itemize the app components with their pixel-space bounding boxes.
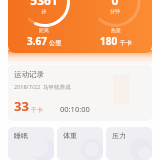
staticText: 距离 xyxy=(39,27,49,33)
button[interactable]: 5361 xyxy=(8,0,152,53)
staticText: 2018/7/22 马甲线养成 xyxy=(14,83,71,91)
staticText: 180 xyxy=(100,34,118,48)
staticText: 热量 xyxy=(111,27,121,33)
staticText: 分钟 xyxy=(90,8,140,14)
staticText: 压力 xyxy=(112,131,126,140)
staticText: 步 xyxy=(19,8,69,14)
staticText: 0 xyxy=(90,0,140,8)
staticText: 千卡 xyxy=(31,106,43,114)
staticText: 睡眠 xyxy=(14,131,28,140)
staticText: 33 xyxy=(14,97,29,115)
button[interactable]: 睡眠 xyxy=(8,127,54,160)
button[interactable]: 体重 xyxy=(57,127,103,160)
staticText: 体重 xyxy=(63,131,77,140)
staticText: 3.67 xyxy=(27,34,47,48)
staticText: 公里 xyxy=(49,39,61,47)
staticText: 5361 xyxy=(19,0,69,8)
staticText: 00:10:00 xyxy=(60,104,90,114)
staticText: 千卡 xyxy=(120,39,132,47)
button[interactable]: 压力 xyxy=(106,127,152,160)
button[interactable]: 运动记录 xyxy=(8,65,152,121)
staticText: 运动记录 xyxy=(14,70,44,79)
